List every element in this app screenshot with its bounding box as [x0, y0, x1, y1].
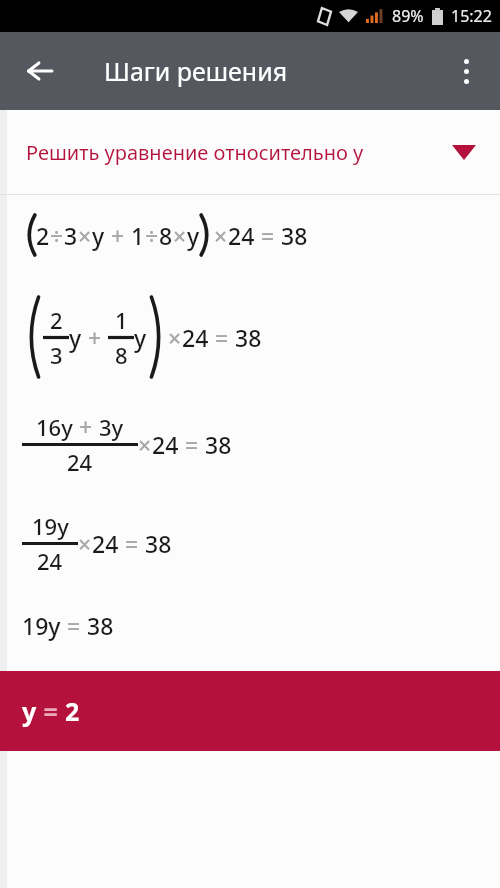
- button[interactable]: Back: [14, 45, 66, 97]
- staticText: 38: [145, 528, 172, 559]
- staticText: 38: [205, 429, 232, 460]
- staticText: 3: [50, 340, 63, 370]
- staticText: 24: [37, 546, 63, 576]
- staticText: 19y: [22, 610, 61, 641]
- staticText: y: [92, 220, 105, 251]
- staticText: +: [73, 411, 99, 442]
- staticText: =: [119, 528, 145, 559]
- staticText: 24: [182, 322, 209, 353]
- staticText: ×: [138, 429, 152, 460]
- staticText: ×: [78, 528, 92, 559]
- staticText: =: [61, 610, 87, 641]
- staticText: 24: [67, 447, 93, 477]
- staticText: 1: [131, 220, 145, 251]
- staticText: =: [37, 694, 65, 728]
- staticText: ÷: [145, 220, 159, 251]
- staticText: +: [82, 322, 108, 353]
- button[interactable]: More options: [440, 45, 492, 97]
- staticText: 3: [64, 220, 78, 251]
- staticText: 24: [152, 429, 179, 460]
- staticText: ÷: [50, 220, 64, 251]
- staticText: 38: [235, 322, 262, 353]
- staticText: 24: [228, 220, 255, 251]
- staticText: 1: [115, 305, 128, 335]
- staticText: 2: [36, 220, 50, 251]
- staticText: ×: [173, 220, 187, 251]
- staticText: 8: [115, 340, 128, 370]
- staticText: 89%: [392, 5, 424, 27]
- staticText: ×: [214, 220, 228, 251]
- staticText: =: [179, 429, 205, 460]
- staticText: =: [209, 322, 235, 353]
- staticText: 8: [159, 220, 173, 251]
- staticText: 19y: [32, 511, 69, 541]
- staticText: 2: [50, 305, 63, 335]
- staticText: 2: [65, 694, 80, 728]
- staticText: 38: [87, 610, 114, 641]
- staticText: ×: [78, 220, 92, 251]
- staticText: y: [22, 694, 37, 728]
- staticText: y: [187, 220, 200, 251]
- staticText: 24: [92, 528, 119, 559]
- staticText: 38: [281, 220, 308, 251]
- staticText: 3y: [99, 412, 124, 442]
- staticText: y: [134, 322, 147, 353]
- staticText: =: [255, 220, 281, 251]
- staticText: 15:22: [451, 5, 492, 27]
- button[interactable]: y: [0, 671, 500, 751]
- staticText: Шаги решения: [104, 54, 288, 88]
- staticText: ×: [168, 322, 182, 353]
- staticText: y: [69, 322, 82, 353]
- staticText: +: [105, 220, 131, 251]
- staticText: Решить уравнение относительно y: [26, 139, 364, 166]
- staticText: 16y: [36, 412, 73, 442]
- button[interactable]: Решить уравнение относительно y: [0, 110, 500, 194]
